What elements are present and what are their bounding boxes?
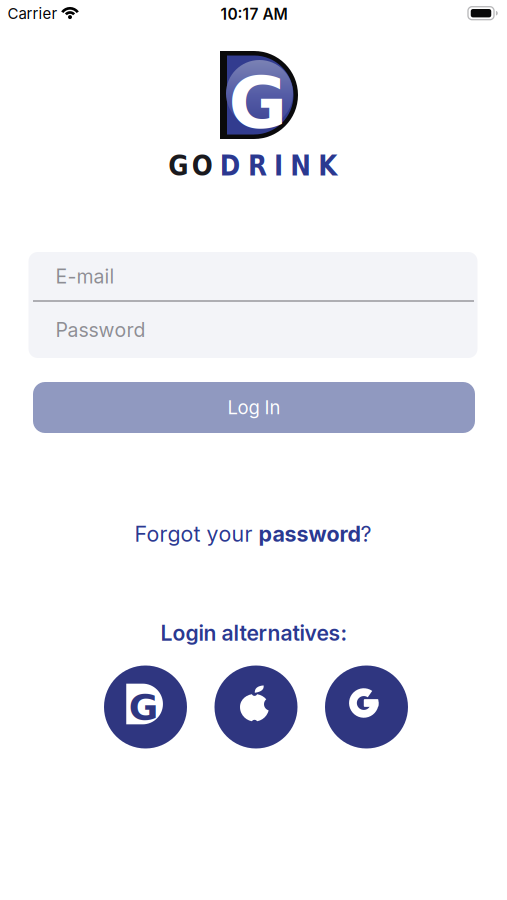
staticText: password (258, 521, 360, 547)
button[interactable]: G (104, 665, 187, 748)
staticText: ? (360, 521, 371, 547)
staticText: G (129, 686, 159, 728)
staticText: Log In (227, 396, 280, 419)
staticText: 10:17 AM (220, 5, 287, 23)
staticText: E-mail (55, 265, 114, 288)
staticText: GO (168, 150, 213, 182)
staticText: Forgot your (134, 521, 258, 547)
button[interactable]: E-mail (28, 252, 477, 300)
staticText: Password (55, 318, 145, 342)
button[interactable] (214, 665, 297, 748)
button[interactable]: Password (28, 306, 477, 354)
staticText: Carrier (7, 4, 57, 22)
button[interactable]: Forgot your (134, 521, 371, 547)
button[interactable] (325, 665, 408, 748)
button[interactable]: Log In (33, 382, 475, 433)
staticText: G (228, 61, 287, 145)
staticText: DRINK (220, 150, 337, 182)
staticText: Login alternatives: (160, 620, 347, 646)
